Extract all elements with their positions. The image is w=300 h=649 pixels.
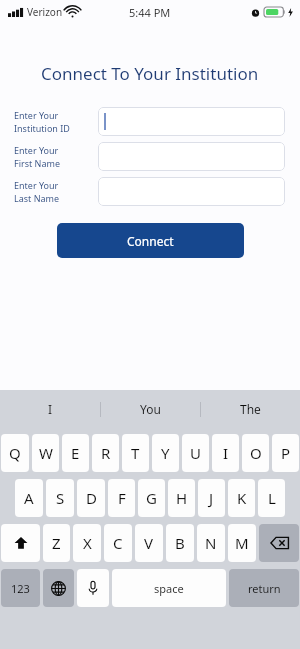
- button[interactable]: N: [197, 524, 225, 562]
- staticText: Connect: [127, 233, 174, 249]
- button[interactable]: Z: [43, 524, 70, 562]
- button[interactable]: Y: [152, 434, 179, 472]
- button[interactable]: P: [272, 434, 299, 472]
- staticText: F: [118, 488, 126, 508]
- button[interactable]: Connect: [57, 223, 244, 258]
- button[interactable]: E: [62, 434, 89, 472]
- staticText: space: [154, 581, 184, 596]
- button[interactable]: [98, 107, 285, 136]
- staticText: L: [268, 488, 276, 508]
- button[interactable]: The: [200, 390, 300, 428]
- staticText: R: [101, 443, 111, 463]
- staticText: D: [86, 488, 97, 508]
- staticText: Q: [9, 443, 21, 463]
- button[interactable]: H: [168, 479, 195, 517]
- staticText: E: [71, 443, 80, 463]
- button[interactable]: Dictate: [77, 569, 109, 607]
- button[interactable]: [98, 177, 285, 206]
- button[interactable]: Shift: [1, 524, 40, 562]
- button[interactable]: L: [258, 479, 285, 517]
- staticText: V: [144, 533, 154, 553]
- staticText: First Name: [14, 157, 60, 169]
- button[interactable]: Q: [1, 434, 29, 472]
- staticText: 123: [11, 581, 30, 596]
- staticText: H: [176, 488, 188, 508]
- button[interactable]: J: [198, 479, 225, 517]
- staticText: A: [24, 488, 34, 508]
- button[interactable]: U: [182, 434, 209, 472]
- button[interactable]: 123: [1, 569, 40, 607]
- staticText: K: [237, 488, 247, 508]
- staticText: W: [39, 443, 53, 463]
- staticText: B: [175, 533, 185, 553]
- staticText: Enter Your: [14, 109, 59, 121]
- button[interactable]: B: [166, 524, 194, 562]
- staticText: return: [248, 581, 281, 596]
- staticText: G: [146, 488, 157, 508]
- staticText: Connect To Your Institution: [41, 62, 259, 85]
- button[interactable]: A: [15, 479, 43, 517]
- staticText: U: [190, 443, 201, 463]
- staticText: I: [48, 401, 53, 417]
- staticText: 5:44 PM: [129, 5, 171, 20]
- button[interactable]: T: [122, 434, 149, 472]
- staticText: N: [205, 533, 217, 553]
- staticText: Last Name: [14, 192, 60, 204]
- button[interactable]: space: [112, 569, 226, 607]
- button[interactable]: return: [229, 569, 299, 607]
- button[interactable]: I: [212, 434, 239, 472]
- button[interactable]: V: [135, 524, 163, 562]
- button[interactable]: F: [108, 479, 135, 517]
- staticText: Enter Your: [14, 144, 59, 156]
- staticText: S: [56, 488, 65, 508]
- staticText: X: [83, 533, 92, 553]
- button[interactable]: [98, 142, 285, 171]
- staticText: J: [209, 488, 214, 508]
- button[interactable]: You: [100, 390, 200, 428]
- button[interactable]: M: [228, 524, 256, 562]
- staticText: Verizon: [27, 5, 63, 19]
- staticText: Y: [161, 443, 170, 463]
- button[interactable]: R: [92, 434, 119, 472]
- button[interactable]: I: [0, 390, 100, 428]
- staticText: P: [281, 443, 291, 463]
- button[interactable]: X: [73, 524, 101, 562]
- button[interactable]: K: [228, 479, 255, 517]
- button[interactable]: W: [32, 434, 59, 472]
- staticText: You: [140, 401, 161, 417]
- staticText: C: [113, 533, 123, 553]
- button[interactable]: D: [77, 479, 105, 517]
- staticText: I: [223, 443, 229, 463]
- button[interactable]: Backspace: [259, 524, 299, 562]
- button[interactable]: S: [46, 479, 74, 517]
- staticText: Institution ID: [14, 122, 70, 134]
- staticText: Enter Your: [14, 179, 59, 191]
- staticText: Z: [52, 533, 61, 553]
- staticText: The: [240, 401, 261, 417]
- staticText: M: [235, 533, 249, 553]
- button[interactable]: C: [104, 524, 132, 562]
- staticText: T: [131, 443, 140, 463]
- button[interactable]: O: [242, 434, 269, 472]
- button[interactable]: G: [138, 479, 165, 517]
- button[interactable]: Change keyboard language: [43, 569, 74, 607]
- staticText: O: [250, 443, 262, 463]
